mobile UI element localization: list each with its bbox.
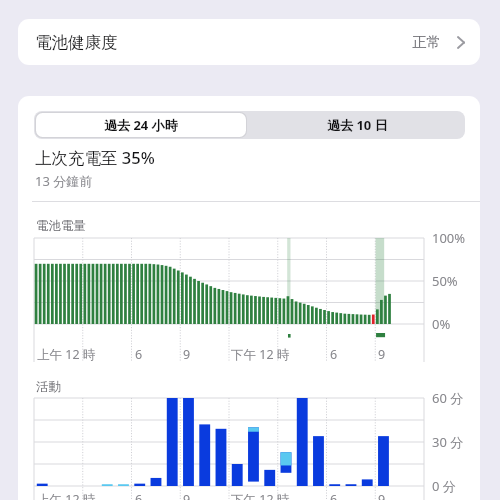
button[interactable]: 過去 24 小時 xyxy=(36,113,246,137)
staticText: 電池健康度 xyxy=(35,32,118,53)
staticText: 正常 xyxy=(412,33,441,51)
staticText: 6 xyxy=(135,491,143,500)
staticText: 0 分 xyxy=(432,477,456,495)
staticText: 6 xyxy=(330,346,338,363)
staticText: 活動 xyxy=(36,379,61,395)
staticText: 9 xyxy=(378,346,386,363)
staticText: 過去 24 小時 xyxy=(104,116,178,134)
staticText: 電池電量 xyxy=(36,218,86,234)
button[interactable]: 電池健康度 xyxy=(18,19,480,65)
staticText: 30 分 xyxy=(432,433,464,451)
staticText: 50% xyxy=(432,272,458,290)
staticText: 上午 12 時 xyxy=(37,346,96,363)
staticText: 上次充電至 35% xyxy=(35,146,155,169)
staticText: 6 xyxy=(330,491,338,500)
staticText: 9 xyxy=(183,346,191,363)
staticText: 13 分鐘前 xyxy=(35,172,93,190)
staticText: 9 xyxy=(183,491,191,500)
staticText: 上午 12 時 xyxy=(37,491,96,500)
staticText: 9 xyxy=(378,491,386,500)
button[interactable]: 過去 10 日 xyxy=(250,112,464,138)
staticText: 6 xyxy=(135,346,143,363)
staticText: 過去 10 日 xyxy=(327,116,388,134)
staticText: 0% xyxy=(432,315,451,333)
staticText: 下午 12 時 xyxy=(231,346,290,363)
staticText: 60 分 xyxy=(432,389,464,407)
staticText: 100% xyxy=(432,229,466,247)
staticText: 下午 12 時 xyxy=(231,491,290,500)
